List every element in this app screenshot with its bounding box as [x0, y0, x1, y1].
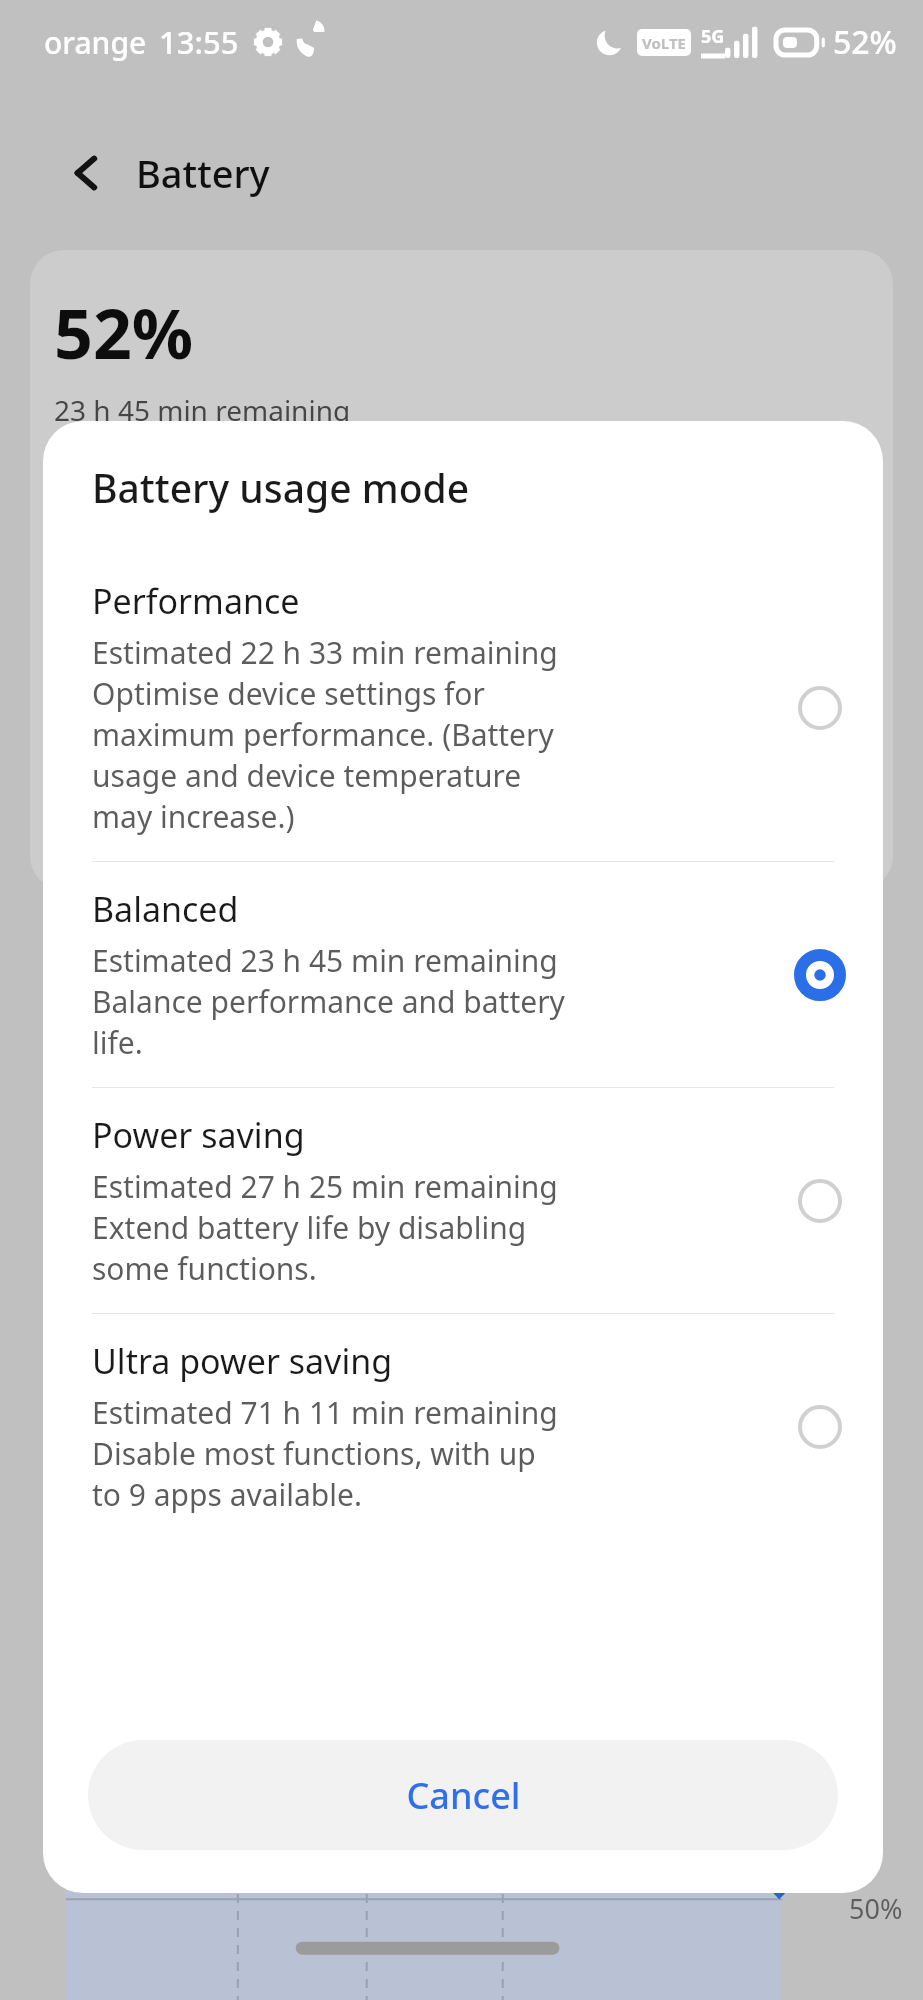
staticText: 52%: [833, 20, 897, 64]
staticText: Battery usage mode: [92, 461, 470, 514]
staticText: 13:55: [159, 21, 239, 63]
button[interactable]: Ultra power saving: [43, 1314, 883, 1539]
staticText: VoLTE: [642, 33, 686, 53]
other: Balanced, selected: [787, 942, 853, 1008]
other: Performance: [787, 675, 853, 741]
staticText: Cancel: [406, 1771, 521, 1820]
staticText: Balance performance and battery: [92, 981, 565, 1022]
staticText: usage and device temperature: [92, 755, 522, 796]
staticText: Balanced: [92, 886, 239, 932]
staticText: Estimated 71 h 11 min remaining: [92, 1392, 558, 1433]
staticText: life.: [92, 1022, 143, 1063]
staticText: Disable most functions, with up: [92, 1433, 536, 1474]
staticText: maximum performance. (Battery: [92, 714, 554, 755]
button[interactable]: Performance: [43, 554, 883, 861]
staticText: Power saving: [92, 1112, 305, 1158]
staticText: Estimated 27 h 25 min remaining: [92, 1166, 558, 1207]
staticText: Optimise device settings for: [92, 673, 485, 714]
staticText: 23 h 45 min remaining: [54, 391, 351, 429]
other: Power saving: [787, 1168, 853, 1234]
staticText: to 9 apps available.: [92, 1474, 362, 1515]
staticText: some functions.: [92, 1248, 317, 1289]
staticText: Estimated 23 h 45 min remaining: [92, 940, 558, 981]
staticText: 5G: [701, 24, 725, 49]
staticText: may increase.): [92, 796, 295, 837]
staticText: Battery: [136, 147, 270, 199]
other: Ultra power saving: [787, 1394, 853, 1460]
button[interactable]: Balanced: [43, 862, 883, 1087]
button[interactable]: Back: [60, 146, 114, 200]
staticText: Estimated 22 h 33 min remaining: [92, 632, 558, 673]
button[interactable]: Power saving: [43, 1088, 883, 1313]
staticText: Performance: [92, 578, 300, 624]
staticText: Ultra power saving: [92, 1338, 393, 1384]
staticText: 52%: [54, 286, 194, 379]
staticText: Extend battery life by disabling: [92, 1207, 527, 1248]
staticText: orange: [44, 22, 147, 63]
button[interactable]: Cancel: [88, 1740, 838, 1850]
staticText: 50%: [849, 1890, 903, 1927]
